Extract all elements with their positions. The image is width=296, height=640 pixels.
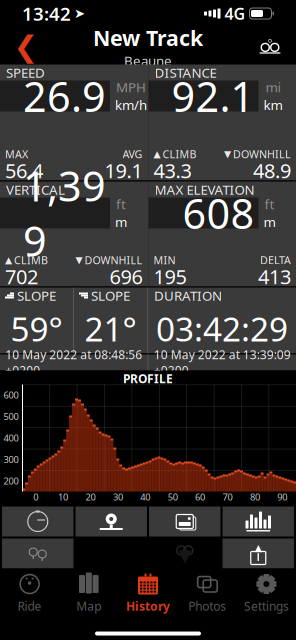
staticText: Map [76, 598, 101, 614]
staticText: m [115, 213, 127, 231]
staticText: 26.9 [23, 69, 106, 123]
staticText: MAX ELEVATION [154, 181, 254, 198]
staticText: DOWNHILL [233, 147, 291, 161]
staticText: Settings [244, 598, 289, 614]
staticText: 10 May 2022 at 08:48:56 +0200 [5, 347, 142, 378]
staticText: 1,399 [23, 158, 106, 268]
staticText: 0 [33, 491, 38, 503]
button[interactable]: Charts [222, 506, 294, 536]
staticText: ft [264, 195, 274, 213]
staticText: 600 [3, 389, 18, 401]
button[interactable]: Photos [149, 506, 220, 536]
staticText: ▲ [153, 149, 160, 159]
button[interactable]: Waypoints [2, 538, 73, 568]
staticText: 48.9 [253, 157, 291, 184]
staticText: 195 [153, 263, 186, 290]
staticText: Photos [188, 598, 226, 614]
staticText: 43.3 [153, 157, 191, 184]
staticText: km [263, 96, 282, 114]
staticText: MAX [5, 147, 28, 161]
button[interactable]: Stopwatch [2, 506, 73, 536]
staticText: DELTA [260, 253, 291, 267]
staticText: Beaune [124, 52, 172, 69]
button[interactable]: Favorite [149, 538, 220, 568]
staticText: 59° [10, 306, 62, 351]
staticText: ➤ [74, 6, 85, 21]
staticText: km/h [115, 96, 147, 114]
staticText: MPH [116, 78, 146, 96]
button[interactable]: History [118, 568, 178, 617]
button[interactable]: Ride [0, 568, 59, 617]
staticText: ▲ [255, 542, 262, 553]
staticText: SPEED [6, 64, 45, 81]
staticText: 40 [140, 491, 150, 503]
staticText: 20 [85, 491, 95, 503]
staticText: 19.1 [104, 157, 142, 184]
staticText: ▼ [224, 149, 231, 159]
staticText: ▲ [5, 255, 12, 265]
staticText: 696 [109, 263, 142, 290]
staticText: 500 [3, 410, 18, 423]
staticText: 90 [277, 491, 287, 503]
staticText: CLIMB [162, 147, 196, 161]
staticText: 10 May 2022 at 13:39:09 +0200 [154, 347, 291, 378]
staticText: DOWNHILL [84, 253, 142, 267]
staticText: 200 [3, 475, 18, 487]
button[interactable]: Back [6, 29, 46, 63]
button[interactable]: Settings [237, 568, 296, 617]
staticText: 56.4 [5, 157, 43, 184]
staticText: 4G [224, 3, 245, 24]
staticText: ❮ [13, 30, 38, 63]
staticText: ▼ [178, 546, 191, 565]
staticText: 60 [195, 491, 205, 503]
staticText: New Track [93, 23, 203, 52]
staticText: Ride [18, 598, 42, 614]
button[interactable]: Map [75, 506, 147, 536]
staticText: ▼ [75, 255, 82, 265]
staticText: 70 [222, 491, 232, 503]
staticText: SLOPE [17, 287, 56, 304]
staticText: 92.1 [171, 69, 254, 123]
staticText: 50 [168, 491, 178, 503]
staticText: 702 [5, 263, 38, 290]
staticText: 10 [58, 491, 68, 503]
staticText: 03:42:29 [156, 306, 288, 351]
staticText: History [126, 598, 170, 614]
button[interactable]: Activity type [250, 29, 290, 63]
staticText: 13:42 [22, 1, 71, 26]
staticText: 300 [3, 453, 18, 466]
button[interactable]: Photos [178, 568, 237, 617]
staticText: MIN [153, 253, 175, 267]
staticText: DURATION [154, 287, 222, 304]
staticText: SLOPE [91, 287, 130, 304]
staticText: 30 [113, 491, 123, 503]
staticText: 80 [250, 491, 260, 503]
staticText: mi [265, 78, 280, 96]
staticText: ft [116, 195, 126, 213]
button[interactable]: Share [222, 538, 294, 568]
staticText: CLIMB [14, 253, 48, 267]
staticText: VERTICAL [6, 181, 65, 198]
staticText: 400 [3, 432, 18, 444]
staticText: 21° [84, 306, 136, 351]
staticText: DISTANCE [154, 64, 216, 81]
staticText: AVG [122, 147, 142, 161]
staticText: 413 [258, 263, 291, 290]
button[interactable]: Map [59, 568, 118, 617]
staticText: PROFILE [123, 370, 173, 386]
staticText: 608 [182, 186, 254, 240]
staticText: m [263, 213, 275, 231]
